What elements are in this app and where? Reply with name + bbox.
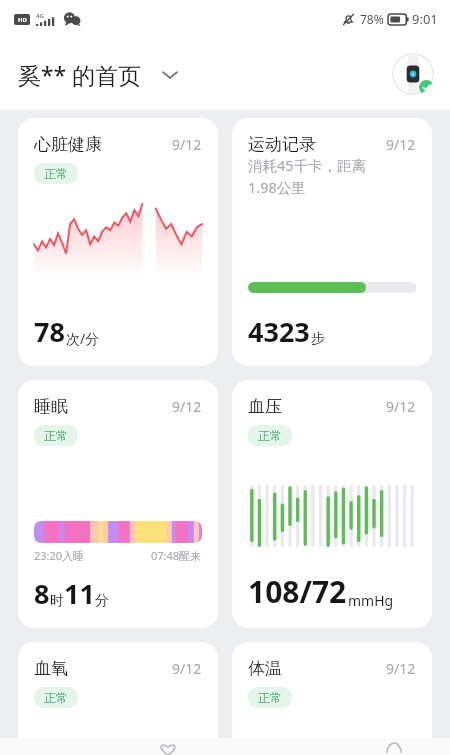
button[interactable]: My device [392, 53, 434, 95]
staticText: 9/12 [386, 659, 416, 678]
staticText: 分 [95, 592, 109, 610]
button[interactable]: 运动记录 [232, 118, 432, 366]
staticText: 23:20入睡 [34, 548, 85, 563]
staticText: 正常 [44, 428, 68, 443]
staticText: 奚** 的首页 [18, 59, 142, 90]
staticText: 9/12 [386, 135, 416, 154]
staticText: 睡眠 [34, 396, 68, 417]
staticText: 体温 [248, 658, 282, 679]
staticText: 9/12 [172, 397, 202, 416]
staticText: 时 [50, 592, 64, 610]
staticText: 9/12 [172, 659, 202, 678]
staticText: 9:01 [412, 10, 438, 28]
staticText: 正常 [258, 690, 282, 705]
staticText: 108/72 [248, 571, 347, 612]
staticText: 07:48醒来 [151, 548, 202, 563]
staticText: 次/分 [66, 329, 100, 348]
staticText: 步 [311, 330, 325, 348]
button[interactable]: 血氧 [18, 642, 218, 755]
staticText: 正常 [258, 428, 282, 443]
staticText: 正常 [44, 690, 68, 705]
button[interactable]: Exercise [112, 738, 224, 755]
button[interactable]: 血压 [232, 380, 432, 628]
staticText: HD [18, 16, 27, 24]
staticText: 正常 [44, 166, 68, 181]
staticText: 心脏健康 [34, 134, 102, 155]
button[interactable]: Me [337, 738, 450, 755]
button[interactable]: 心脏健康 [18, 118, 218, 366]
staticText: 8 [34, 575, 50, 612]
staticText: 11 [64, 575, 95, 612]
staticText: 4G [36, 12, 44, 20]
staticText: 血氧 [34, 658, 68, 679]
staticText: 4323 [248, 313, 310, 350]
staticText: 血压 [248, 396, 282, 417]
button[interactable]: 睡眠 [18, 380, 218, 628]
staticText: 运动记录 [248, 134, 316, 155]
staticText: 9/12 [172, 135, 202, 154]
staticText: 78 [34, 313, 65, 350]
staticText: 消耗45千卡，距离 1.98公里 [248, 155, 367, 198]
button[interactable]: 奚** 的首页 [18, 59, 178, 90]
button[interactable]: 体温 [232, 642, 432, 755]
staticText: mmHg [348, 591, 394, 610]
staticText: 78% [360, 11, 384, 27]
staticText: 9/12 [386, 397, 416, 416]
